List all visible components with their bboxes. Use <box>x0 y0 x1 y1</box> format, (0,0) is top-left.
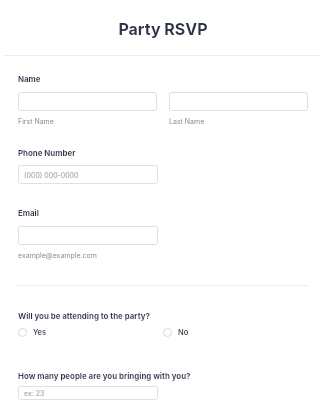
button[interactable]: ex: 23 <box>18 386 158 400</box>
button[interactable]: No <box>163 328 308 337</box>
staticText: (000) 000-0000 <box>24 171 79 179</box>
button[interactable] <box>18 226 158 245</box>
staticText: Will you be attending to the party? <box>18 311 150 321</box>
staticText: Email <box>18 208 39 218</box>
staticText: First Name <box>18 117 54 125</box>
staticText: example@example.com <box>18 251 97 259</box>
staticText: Name <box>18 74 41 84</box>
staticText: Last Name <box>169 117 205 125</box>
button[interactable] <box>18 92 157 111</box>
staticText: Yes <box>33 328 47 337</box>
button[interactable]: (000) 000-0000 <box>18 165 158 184</box>
staticText: No <box>178 328 189 337</box>
staticText: Party RSVP <box>118 19 208 38</box>
staticText: Phone Number <box>18 148 76 158</box>
staticText: ex: 23 <box>24 389 45 397</box>
button[interactable] <box>169 92 308 111</box>
button[interactable]: Yes <box>18 328 163 337</box>
staticText: How many people are you bringing with yo… <box>18 371 191 381</box>
